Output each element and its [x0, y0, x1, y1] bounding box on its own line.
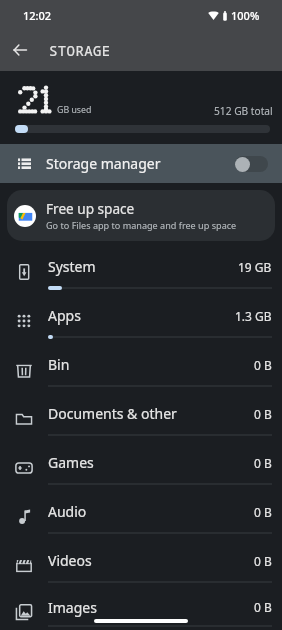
staticText: System [48, 257, 96, 276]
staticText: 0 B [254, 553, 272, 569]
button[interactable]: Videos [0, 537, 282, 586]
staticText: 0 B [254, 357, 272, 373]
button[interactable]: Back [2, 32, 38, 68]
staticText: 512 GB total [214, 104, 273, 118]
staticText: GB used [57, 104, 92, 116]
staticText: Storage manager [46, 154, 161, 173]
staticText: Apps [48, 306, 81, 325]
button[interactable]: Apps [0, 292, 282, 341]
staticText: Go to Files app to manage and free up sp… [46, 219, 237, 231]
staticText: 0 B [254, 406, 272, 422]
button[interactable]: Images [0, 586, 282, 630]
staticText: STORAGE [49, 41, 111, 60]
staticText: 0 B [254, 455, 272, 471]
button[interactable]: Storage manager [0, 144, 282, 183]
staticText: Images [48, 598, 97, 617]
staticText: Documents & other [48, 404, 177, 423]
button[interactable]: Games [0, 439, 282, 488]
staticText: 1.3 GB [235, 308, 272, 324]
staticText: Free up space [46, 199, 135, 218]
button[interactable]: Documents & other [0, 390, 282, 439]
button[interactable]: Audio [0, 488, 282, 537]
staticText: Bin [48, 355, 70, 374]
button[interactable]: Free up space [7, 190, 275, 241]
staticText: 19 GB [238, 259, 272, 275]
button[interactable]: System [0, 243, 282, 292]
staticText: 12:02 [23, 8, 52, 23]
staticText: Audio [48, 502, 87, 521]
staticText: Videos [48, 551, 92, 570]
staticText: Games [48, 453, 94, 472]
staticText: 0 B [254, 504, 272, 520]
button[interactable]: Bin [0, 341, 282, 390]
staticText: 100% [231, 8, 260, 23]
staticText: 0 B [254, 599, 272, 615]
